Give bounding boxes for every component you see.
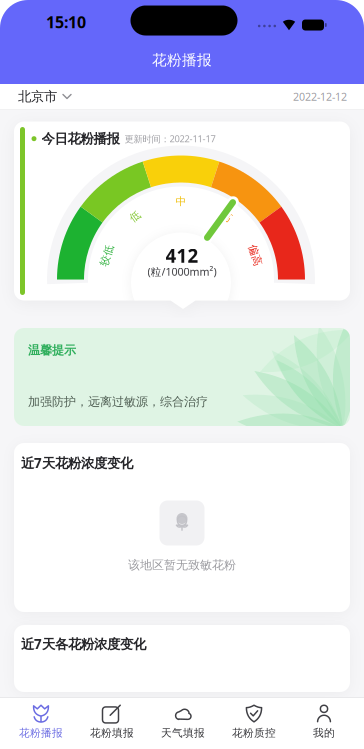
staticText: 花粉填报 bbox=[90, 726, 134, 739]
staticText: 近7天花粉浓度变化 bbox=[21, 454, 133, 472]
staticText: 更新时间：2022-11-17 bbox=[124, 132, 215, 145]
staticText: 15:10 bbox=[46, 11, 86, 33]
staticText: 高 bbox=[221, 210, 232, 223]
button[interactable]: 花粉播报 bbox=[7, 698, 75, 744]
staticText: 我的 bbox=[313, 726, 335, 739]
staticText: 412 bbox=[165, 243, 198, 268]
staticText: 中 bbox=[175, 195, 186, 208]
staticText: 花粉质控 bbox=[232, 726, 276, 739]
staticText: 低 bbox=[130, 210, 141, 223]
button[interactable]: 我的 bbox=[290, 698, 358, 744]
button[interactable]: 天气填报 bbox=[149, 698, 217, 744]
staticText: 花粉播报 bbox=[19, 726, 63, 739]
staticText: 较低 bbox=[96, 249, 118, 262]
staticText: 北京市 bbox=[18, 88, 57, 105]
staticText: 加强防护，远离过敏源，综合治疗 bbox=[28, 394, 208, 409]
button[interactable]: 北京市 bbox=[0, 88, 71, 105]
button[interactable]: 花粉质控 bbox=[220, 698, 288, 744]
button[interactable]: 花粉填报 bbox=[78, 698, 146, 744]
staticText: (粒/1000mm²) bbox=[147, 264, 216, 279]
staticText: 该地区暂无致敏花粉 bbox=[128, 558, 236, 572]
staticText: 花粉播报 bbox=[152, 51, 212, 69]
staticText: 2022-12-12 bbox=[293, 89, 347, 104]
staticText: 偏高 bbox=[244, 249, 266, 262]
staticText: 温馨提示 bbox=[28, 343, 76, 358]
staticText: 今日花粉播报 bbox=[41, 130, 119, 147]
staticText: 天气填报 bbox=[161, 726, 205, 739]
staticText: 近7天各花粉浓度变化 bbox=[21, 635, 146, 653]
